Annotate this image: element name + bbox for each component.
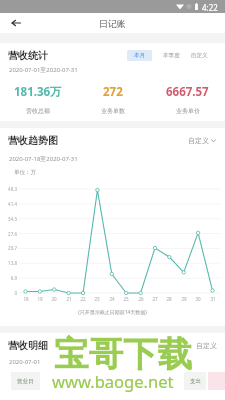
staticText: 本季度 <box>163 52 180 59</box>
staticText: 28 <box>163 296 175 302</box>
button[interactable]: 本月 <box>127 50 152 61</box>
staticText: 19 <box>34 296 46 302</box>
staticText: 23 <box>91 296 103 302</box>
staticText: 181.36万 <box>14 84 62 100</box>
staticText: 支出 <box>190 378 201 385</box>
staticText: 宝哥下载 <box>54 333 192 376</box>
staticText: 2020-07-18至2020-07-31 <box>9 155 78 163</box>
staticText: 27.6 <box>0 231 17 237</box>
staticText: 4:22 <box>202 2 218 13</box>
staticText: 22 <box>77 296 89 302</box>
button[interactable]: 营业日 <box>11 372 40 390</box>
staticText: 41.4 <box>0 201 17 207</box>
staticText: 单位：万 <box>14 169 36 176</box>
button[interactable]: Back <box>0 13 32 33</box>
button[interactable]: 自定义 <box>196 341 217 350</box>
staticText: 27 <box>149 296 161 302</box>
staticText: 营收明细 <box>8 339 48 352</box>
staticText: 营收统计 <box>8 49 48 62</box>
staticText: 34.5 <box>0 216 17 222</box>
staticText: www.baoge.net <box>52 370 174 392</box>
staticText: 2020-07-01 <box>9 358 41 366</box>
button[interactable]: 自定义 <box>191 50 208 61</box>
button[interactable]: 支出 <box>184 372 206 390</box>
staticText: 29 <box>178 296 190 302</box>
staticText: 20 <box>48 296 60 302</box>
staticText: 13.8 <box>0 260 17 266</box>
staticText: 20.7 <box>0 245 17 251</box>
button[interactable]: 本季度 <box>163 50 180 61</box>
staticText: 本月 <box>134 52 145 59</box>
staticText: 21 <box>63 296 75 302</box>
staticText: 自定义 <box>196 341 217 350</box>
staticText: 25 <box>120 296 132 302</box>
staticText: 0 <box>0 290 17 296</box>
staticText: 2020-07-01至2020-07-31 <box>9 66 78 74</box>
staticText: 48.3 <box>0 186 17 192</box>
staticText: (只开显示截止日期前14天数据) <box>0 309 225 316</box>
staticText: 自定义 <box>191 52 208 59</box>
staticText: 6.9 <box>0 275 17 281</box>
staticText: 30 <box>192 296 204 302</box>
staticText: 24 <box>106 296 118 302</box>
staticText: 业务单价 <box>176 107 200 115</box>
staticText: 18 <box>20 296 32 302</box>
staticText: 6667.57 <box>166 84 209 100</box>
staticText: 营收趋势图 <box>8 134 58 147</box>
button[interactable]: 自定义 <box>188 136 217 145</box>
staticText: 26 <box>135 296 147 302</box>
staticText: 业务单数 <box>101 107 125 115</box>
staticText: 日记账 <box>99 18 126 29</box>
staticText: 31 <box>207 296 219 302</box>
staticText: 营收总额 <box>26 107 50 115</box>
staticText: 272 <box>103 84 123 100</box>
staticText: 自定义 <box>188 136 209 145</box>
staticText: 营业日 <box>17 378 34 385</box>
